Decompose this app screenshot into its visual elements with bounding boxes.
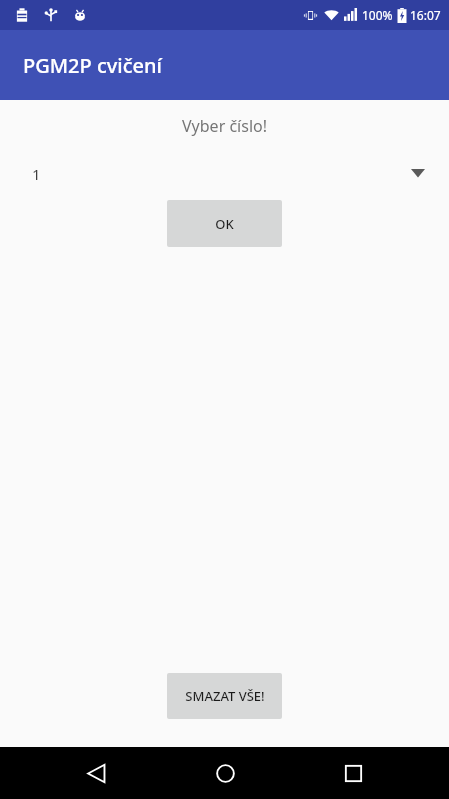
staticText: 100% [362,7,393,23]
button[interactable]: 1 [0,154,449,194]
staticText: SMAZAT VŠE! [185,687,265,705]
button[interactable]: Back [63,747,129,799]
staticText: 1 [32,164,41,184]
button[interactable]: Home [192,747,258,799]
button[interactable]: Recent apps [320,747,386,799]
staticText: OK [215,215,234,233]
staticText: PGM2P cvičení [23,52,162,79]
staticText: Vyber číslo! [182,115,267,137]
button[interactable]: OK [167,200,282,247]
staticText: 16:07 [410,7,441,23]
button[interactable]: SMAZAT VŠE! [167,673,282,719]
